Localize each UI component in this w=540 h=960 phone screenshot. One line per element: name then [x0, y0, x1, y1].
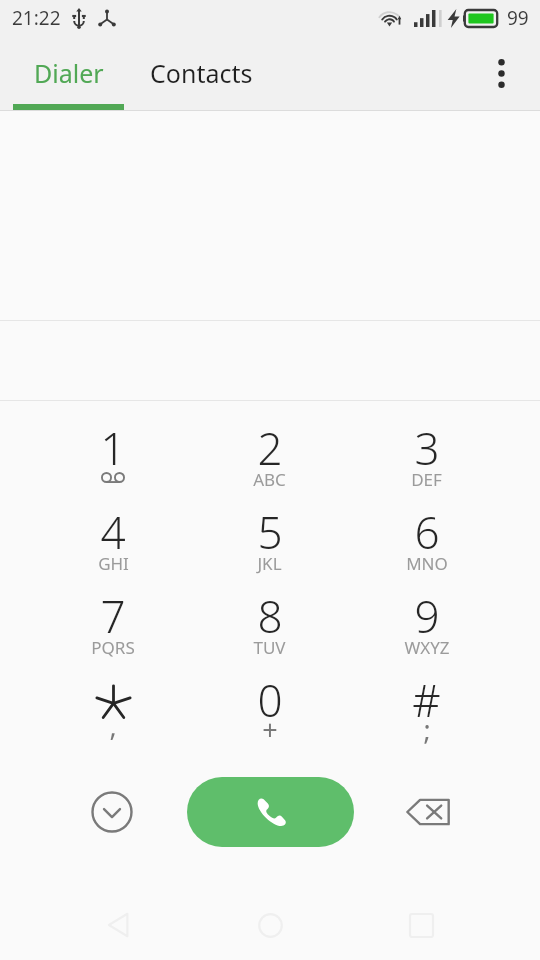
staticText: WXYZ	[404, 636, 450, 659]
staticText: 99	[507, 5, 529, 31]
staticText: +	[262, 711, 278, 748]
button[interactable]: 7 PQRS	[35, 569, 191, 653]
staticText: JKL	[257, 552, 282, 575]
staticText: Contacts	[150, 56, 253, 90]
button[interactable]: 5 JKL	[191, 485, 348, 569]
staticText: #	[412, 670, 441, 730]
staticText: 2	[257, 418, 283, 478]
staticText: ,	[109, 707, 117, 744]
button[interactable]: Call	[187, 777, 354, 847]
button[interactable]: Backspace	[401, 785, 455, 839]
staticText: PQRS	[91, 636, 135, 659]
button[interactable]: star	[35, 653, 191, 737]
staticText: 0	[257, 670, 283, 730]
button[interactable]: 8 TUV	[191, 569, 348, 653]
staticText: 4	[100, 502, 126, 562]
button[interactable]: 9 WXYZ	[348, 569, 505, 653]
staticText: 7	[100, 586, 126, 646]
staticText: 6	[414, 502, 440, 562]
button[interactable]: 6 MNO	[348, 485, 505, 569]
staticText: ;	[423, 711, 431, 748]
staticText: 21:22	[12, 5, 61, 31]
button[interactable]: 4 GHI	[35, 485, 191, 569]
staticText: 1	[100, 418, 126, 478]
staticText: DEF	[411, 468, 442, 491]
staticText: 9	[414, 586, 440, 646]
staticText: TUV	[253, 636, 286, 659]
button[interactable]: pound	[348, 653, 505, 737]
staticText: 5	[257, 502, 283, 562]
button[interactable]: More options	[475, 47, 527, 99]
button[interactable]: Hide dialpad	[85, 785, 139, 839]
button[interactable]: 1 voicemail	[35, 401, 191, 485]
button[interactable]: Dialer	[0, 36, 137, 110]
staticText: Dialer	[34, 56, 104, 90]
button[interactable]: 2 ABC	[191, 401, 348, 485]
staticText: 3	[414, 418, 440, 478]
staticText: MNO	[406, 552, 448, 575]
staticText: GHI	[98, 552, 129, 575]
button[interactable]: 3 DEF	[348, 401, 505, 485]
staticText: 8	[257, 586, 283, 646]
staticText: ABC	[253, 468, 286, 491]
button[interactable]: Contacts	[137, 36, 265, 110]
button[interactable]: 0 plus	[191, 653, 348, 737]
